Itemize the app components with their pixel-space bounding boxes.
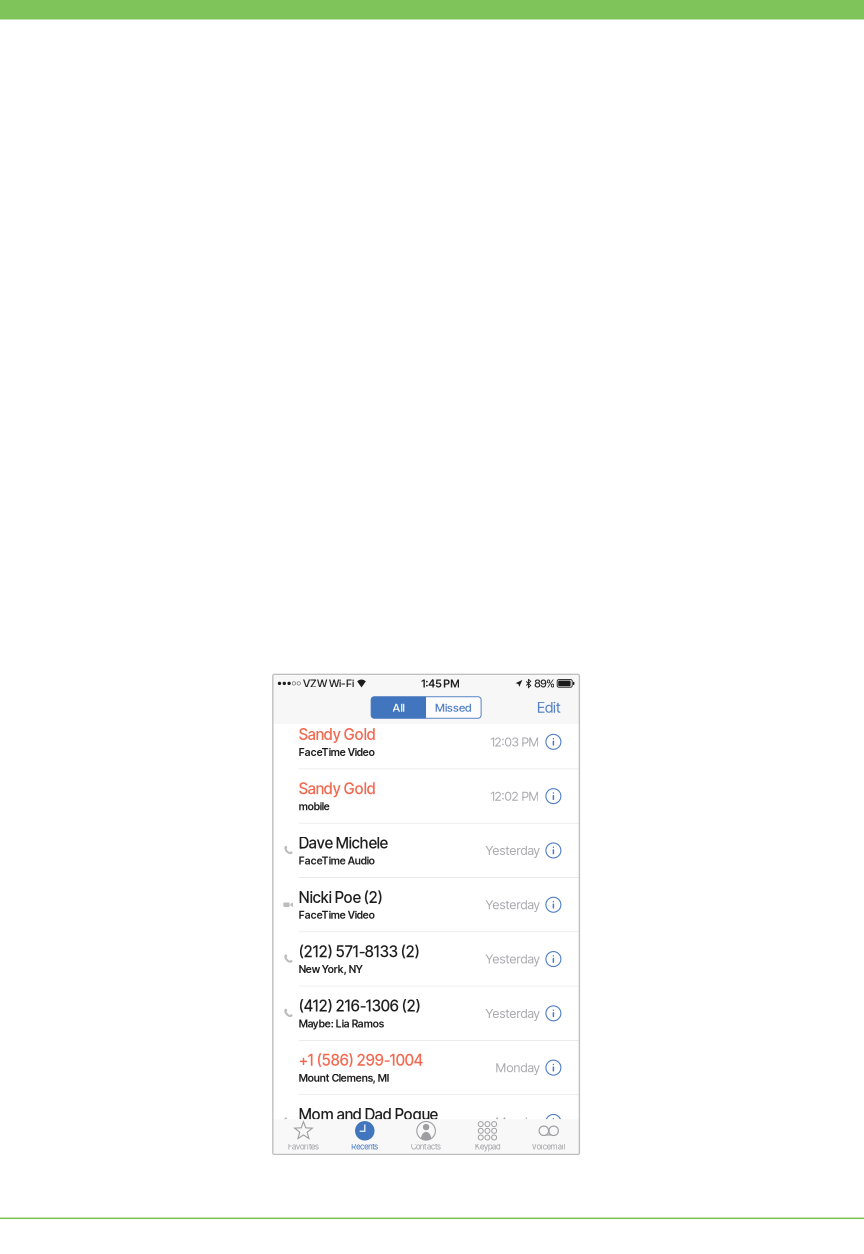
staticText: Recents	[351, 1142, 378, 1151]
staticText: +1 (586) 299-1004	[299, 1051, 423, 1069]
button[interactable]: Mom and Dad Pogue	[273, 1095, 579, 1149]
staticText: Yesterday	[485, 843, 539, 858]
staticText: Yesterday	[485, 1006, 539, 1021]
staticText: Maybe: Lia Ramos	[299, 1017, 384, 1030]
staticText: Mom and Dad Pogue	[299, 1105, 438, 1124]
button[interactable]: Edit	[521, 691, 561, 724]
staticText: (212) 571-8133 (2)	[299, 942, 420, 961]
staticText: mobile	[299, 1126, 330, 1138]
staticText: Monday	[495, 1060, 539, 1075]
button[interactable]: Voicemail	[518, 1119, 579, 1153]
staticText: 12:02 PM	[490, 789, 539, 804]
button[interactable]: Contacts	[395, 1119, 457, 1153]
staticText: Keypad	[475, 1142, 500, 1151]
staticText: VZW Wi-Fi	[303, 677, 354, 690]
button[interactable]: Dave Michele	[273, 824, 579, 878]
staticText: FaceTime Audio	[299, 854, 375, 867]
button[interactable]: Keypad	[457, 1119, 518, 1153]
staticText: New York, NY	[299, 963, 363, 976]
staticText: 89%	[534, 677, 555, 690]
button[interactable]: (412) 216-1306 (2)	[273, 987, 579, 1041]
staticText: mobile	[299, 800, 330, 813]
staticText: Sandy Gold	[299, 725, 376, 744]
staticText: All	[393, 701, 405, 714]
button[interactable]: (212) 571-8133 (2)	[273, 932, 579, 987]
staticText: Voicemail	[532, 1142, 566, 1151]
staticText: FaceTime Video	[299, 746, 375, 758]
staticText: Nicki Poe (2)	[299, 888, 383, 907]
button[interactable]: Favorites	[273, 1119, 334, 1153]
staticText: Monday	[495, 1114, 539, 1130]
staticText: 12:03 PM	[490, 734, 539, 749]
button[interactable]: Sandy Gold	[273, 715, 579, 769]
button[interactable]: Sandy Gold	[273, 769, 579, 824]
staticText: Yesterday	[485, 897, 539, 912]
staticText: Edit	[537, 699, 561, 716]
button[interactable]: Nicki Poe (2)	[273, 878, 579, 932]
staticText: Mount Clemens, MI	[299, 1071, 390, 1084]
staticText: 1:45 PM	[421, 677, 460, 690]
staticText: Missed	[435, 701, 472, 714]
button[interactable]: All	[371, 697, 481, 718]
staticText: Yesterday	[485, 951, 539, 967]
staticText: FaceTime Video	[299, 909, 375, 921]
staticText: (412) 216-1306 (2)	[299, 997, 421, 1015]
staticText: Sandy Gold	[299, 780, 376, 798]
staticText: Favorites	[288, 1142, 319, 1151]
button[interactable]: Recents	[334, 1119, 395, 1153]
staticText: Contacts	[411, 1142, 441, 1151]
button[interactable]: +1 (586) 299-1004	[273, 1041, 579, 1095]
staticText: Dave Michele	[299, 834, 388, 852]
